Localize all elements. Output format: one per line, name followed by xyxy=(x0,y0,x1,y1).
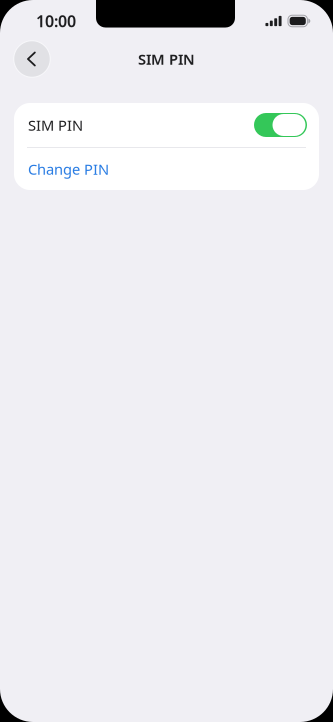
staticText: Change PIN xyxy=(28,159,109,179)
staticText: SIM PIN xyxy=(28,115,83,135)
button[interactable]: Back xyxy=(13,40,51,78)
staticText: 10:00 xyxy=(36,10,76,32)
button[interactable]: Change PIN xyxy=(14,148,319,190)
button[interactable]: SIM PIN xyxy=(14,103,319,147)
staticText: SIM PIN xyxy=(138,49,195,69)
